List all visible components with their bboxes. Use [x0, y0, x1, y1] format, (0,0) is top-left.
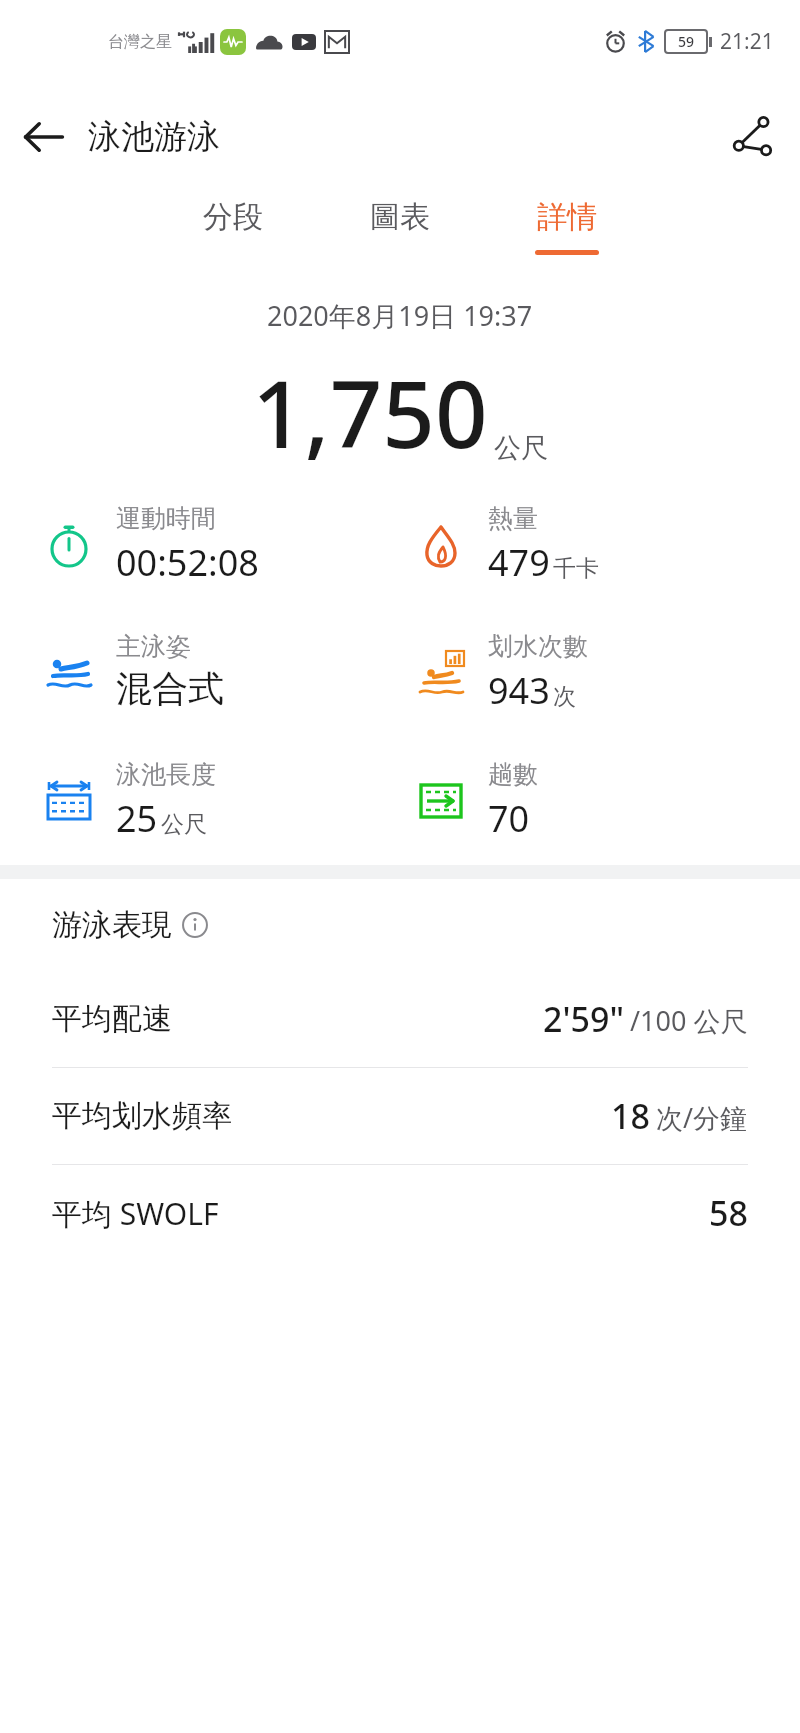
staticText: 公尺	[161, 810, 207, 839]
staticText: 次	[553, 682, 576, 711]
button[interactable]: 熱量	[412, 503, 800, 587]
staticText: 2020年8月19日 19:37	[267, 297, 533, 334]
staticText: 趟數	[488, 759, 538, 790]
button[interactable]: Back	[0, 93, 88, 181]
staticText: 平均配速	[52, 1000, 172, 1038]
staticText: 游泳表現	[52, 906, 172, 944]
staticText: 圖表	[370, 198, 430, 236]
staticText: 公尺	[494, 431, 548, 465]
button[interactable]: 平均划水頻率	[52, 1068, 748, 1164]
staticText: /100 公尺	[630, 1002, 748, 1039]
button[interactable]: 圖表	[316, 192, 483, 261]
staticText: 21:21	[720, 27, 774, 56]
staticText: 千卡	[553, 554, 599, 583]
staticText: 59	[678, 32, 695, 51]
staticText: 943	[488, 666, 550, 715]
staticText: 泳池長度	[116, 759, 216, 790]
staticText: 划水次數	[488, 631, 588, 662]
button[interactable]: 游泳表現	[52, 879, 748, 971]
staticText: 平均 SWOLF	[52, 1193, 219, 1234]
button[interactable]: 平均配速	[52, 971, 748, 1067]
staticText: 25	[116, 794, 158, 843]
staticText: 熱量	[488, 503, 538, 534]
button[interactable]: 趟數	[412, 759, 800, 843]
staticText: 00:52:08	[116, 538, 259, 587]
button[interactable]: 泳池長度	[40, 759, 400, 843]
button[interactable]: 分段	[150, 192, 316, 261]
staticText: 70	[488, 794, 530, 843]
button[interactable]: 主泳姿	[40, 631, 400, 711]
staticText: 479	[488, 538, 550, 587]
button[interactable]: Share	[704, 89, 800, 185]
button[interactable]: 詳情	[483, 192, 650, 261]
staticText: 分段	[203, 198, 263, 236]
staticText: 台灣之星	[108, 32, 172, 52]
staticText: 混合式	[116, 666, 224, 711]
staticText: 主泳姿	[116, 631, 191, 662]
staticText: 次/分鐘	[656, 1099, 748, 1136]
staticText: 1,750	[252, 350, 488, 475]
staticText: 58	[709, 1190, 748, 1236]
staticText: 運動時間	[116, 503, 216, 534]
button[interactable]: 平均 SWOLF	[52, 1165, 748, 1261]
staticText: 詳情	[537, 198, 597, 236]
button[interactable]: 運動時間	[40, 503, 400, 587]
staticText: 平均划水頻率	[52, 1097, 232, 1135]
staticText: 18	[611, 1093, 650, 1139]
button[interactable]: 划水次數	[412, 631, 800, 715]
staticText: 泳池游泳	[88, 116, 220, 158]
staticText: 2'59"	[543, 996, 624, 1042]
